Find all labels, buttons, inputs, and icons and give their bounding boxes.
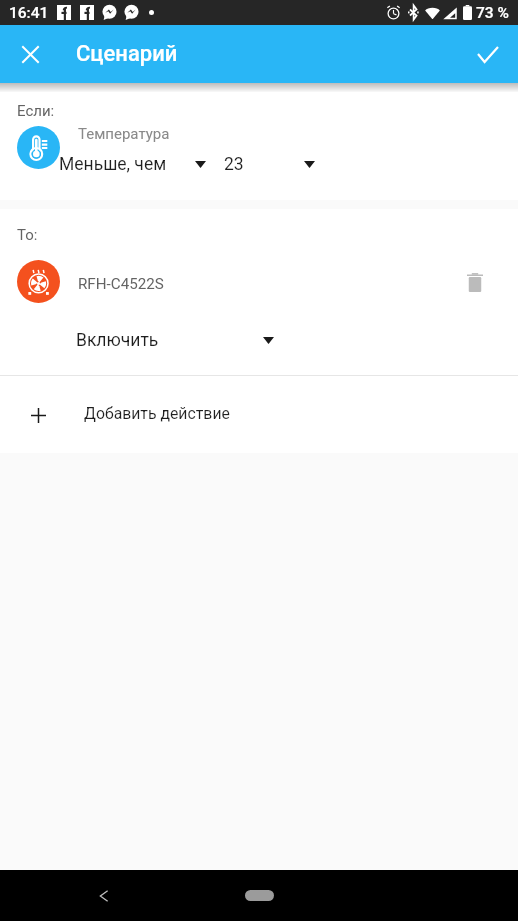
staticText: Если:	[17, 102, 55, 120]
button[interactable]: Back	[85, 877, 123, 915]
button[interactable]: Добавить действие	[0, 375, 518, 452]
staticText: To:	[17, 226, 38, 244]
button[interactable]: Delete action	[452, 260, 497, 305]
button[interactable]: Меньше, чем	[59, 154, 206, 175]
staticText: Меньше, чем	[59, 154, 167, 175]
staticText: 73 %	[476, 4, 509, 22]
staticText: Сценарий	[76, 41, 178, 67]
button[interactable]: Home	[245, 890, 274, 901]
button[interactable]: Heater device	[17, 260, 60, 303]
staticText: 23	[224, 154, 244, 175]
button[interactable]: Включить	[76, 330, 274, 351]
button[interactable]: Temperature condition	[17, 126, 60, 169]
staticText: Температура	[78, 125, 170, 143]
staticText: RFH-C4522S	[78, 275, 164, 293]
button[interactable]: Close	[8, 32, 52, 76]
button[interactable]: 23	[224, 154, 315, 175]
staticText: 16:41	[9, 4, 49, 22]
button[interactable]: Confirm	[466, 32, 510, 76]
staticText: Добавить действие	[84, 404, 230, 423]
staticText: Включить	[76, 330, 159, 351]
